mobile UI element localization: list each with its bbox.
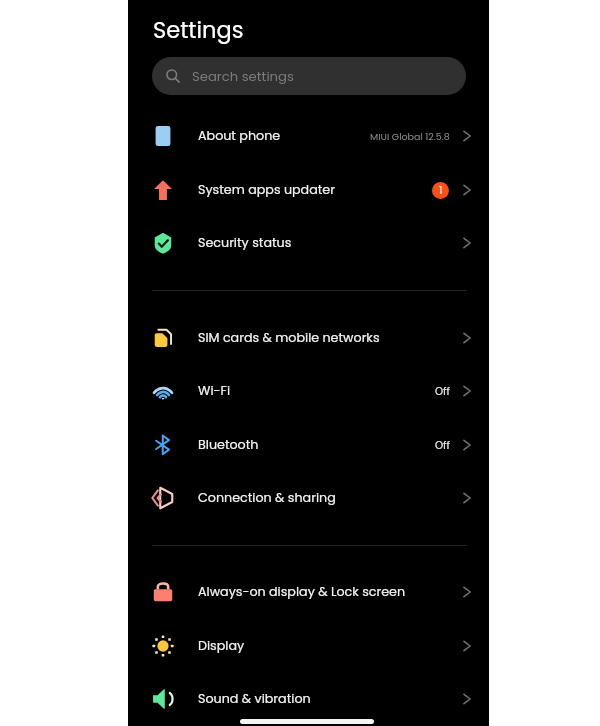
other: About phone bbox=[151, 124, 175, 148]
staticText: Bluetooth bbox=[198, 436, 259, 454]
staticText: Display bbox=[198, 637, 245, 655]
button[interactable]: System apps updater bbox=[128, 163, 489, 217]
staticText: SIM cards & mobile networks bbox=[198, 329, 380, 347]
button[interactable]: Display bbox=[128, 619, 489, 673]
staticText: 1 bbox=[439, 183, 443, 198]
staticText: Always-on display & Lock screen bbox=[198, 583, 406, 601]
staticText: Search settings bbox=[192, 67, 294, 85]
button[interactable]: Always-on display & Lock screen bbox=[128, 565, 489, 619]
button[interactable]: Bluetooth bbox=[128, 418, 489, 472]
button[interactable]: SIM cards & mobile networks bbox=[128, 311, 489, 365]
staticText: About phone bbox=[198, 127, 281, 145]
button[interactable]: Search settings bbox=[152, 57, 466, 95]
staticText: Security status bbox=[198, 234, 292, 252]
staticText: Off bbox=[435, 384, 450, 398]
button[interactable]: Wi-Fi bbox=[128, 364, 489, 418]
staticText: Settings bbox=[153, 14, 244, 45]
button[interactable]: Connection & sharing bbox=[128, 471, 489, 525]
staticText: Sound & vibration bbox=[198, 690, 311, 708]
staticText: Off bbox=[435, 438, 450, 452]
staticText: Connection & sharing bbox=[198, 489, 336, 507]
button[interactable]: About phone bbox=[128, 109, 489, 163]
staticText: System apps updater bbox=[198, 181, 335, 199]
staticText: MIUI Global 12.5.8 bbox=[370, 130, 450, 143]
button[interactable]: Security status bbox=[128, 216, 489, 270]
button[interactable]: Sound & vibration bbox=[128, 672, 489, 726]
staticText: Wi-Fi bbox=[198, 382, 231, 400]
